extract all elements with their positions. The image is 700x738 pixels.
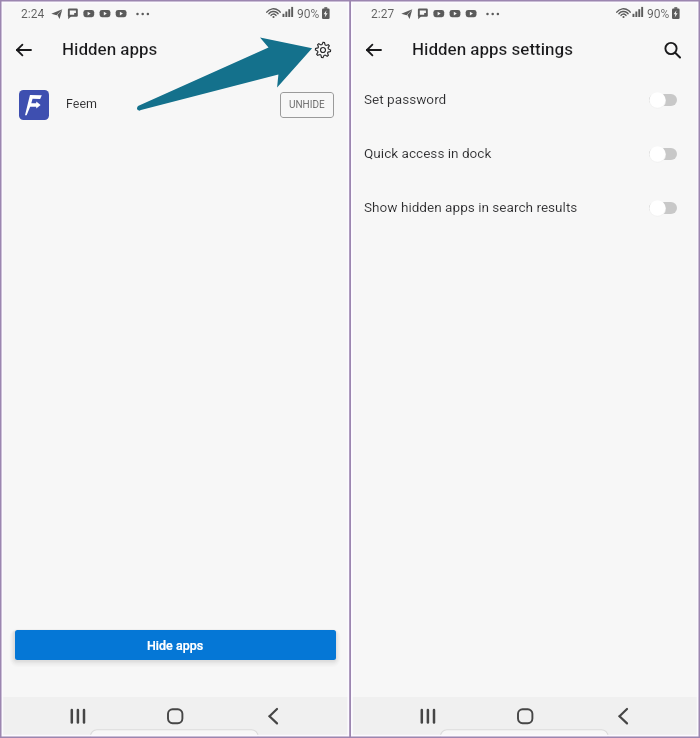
button[interactable]: UNHIDE — [280, 92, 334, 118]
button[interactable]: Hide apps — [15, 630, 336, 660]
staticText: Feem — [66, 96, 97, 111]
staticText: Hidden apps settings — [412, 39, 573, 59]
staticText: Hidden apps — [62, 39, 158, 59]
button[interactable]: Feem — [0, 84, 350, 126]
button[interactable]: Quick access in dock — [350, 132, 700, 176]
button[interactable]: Back — [253, 697, 293, 737]
button[interactable]: Home — [155, 697, 195, 737]
staticText: Hide apps — [147, 638, 204, 653]
staticText: 2:27 — [371, 7, 395, 21]
staticText: 90% — [647, 7, 670, 21]
button[interactable]: Recents — [407, 697, 447, 737]
staticText: 90% — [297, 7, 320, 21]
button[interactable]: Show hidden apps in search results — [350, 186, 700, 230]
staticText: UNHIDE — [289, 99, 325, 111]
staticText: 2:24 — [21, 7, 45, 21]
button[interactable]: Home — [505, 697, 545, 737]
button[interactable]: Settings — [310, 37, 336, 63]
staticText: Quick access in dock — [364, 145, 492, 161]
button[interactable]: Back — [360, 36, 388, 64]
button[interactable]: Recents — [57, 697, 97, 737]
button[interactable]: Set password — [350, 78, 700, 122]
button[interactable]: Back — [10, 36, 38, 64]
button[interactable]: Search — [659, 37, 685, 63]
staticText: Set password — [364, 91, 447, 107]
staticText: Show hidden apps in search results — [364, 199, 578, 215]
button[interactable]: Back — [603, 697, 643, 737]
